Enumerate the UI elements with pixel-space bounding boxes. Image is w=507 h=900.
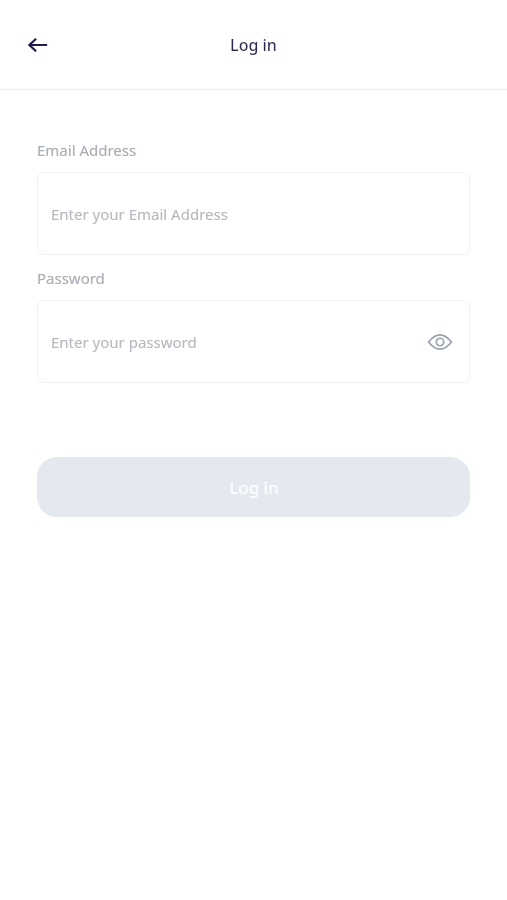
staticText: Enter your Email Address [51,204,228,224]
button[interactable]: Back [14,21,62,69]
staticText: Enter your password [51,332,197,352]
staticText: Password [37,268,105,288]
button[interactable]: Enter your password [37,300,470,383]
staticText: Email Address [37,140,137,160]
staticText: Log in [230,34,277,56]
button[interactable]: Log in [37,457,470,517]
staticText: Log in [229,476,279,499]
button[interactable]: Show password [420,322,460,362]
button[interactable]: Enter your Email Address [37,172,470,255]
